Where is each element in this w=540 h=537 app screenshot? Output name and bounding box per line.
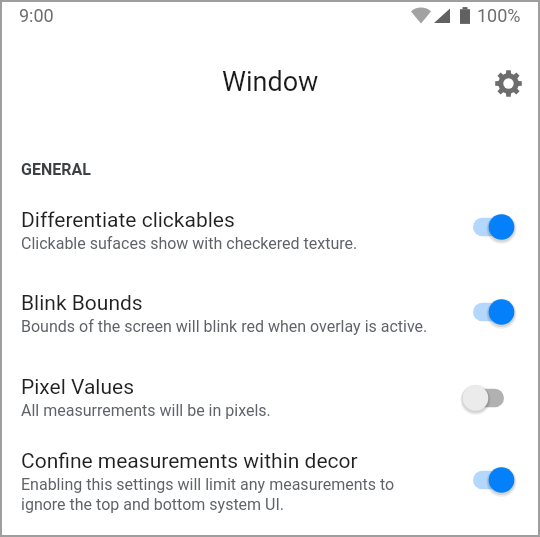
staticText: Pixel Values — [21, 375, 134, 400]
staticText: GENERAL — [21, 160, 91, 179]
button[interactable]: Confine measurements within decor — [2, 435, 538, 521]
staticText: Blink Bounds — [21, 291, 143, 316]
staticText: 100% — [477, 5, 521, 26]
staticText: Differentiate clickables — [21, 208, 235, 233]
button[interactable]: Pixel Values, off, toggle — [455, 380, 521, 416]
staticText: Confine measurements within decor — [21, 449, 358, 474]
button[interactable]: Confine measurements within decor, on, t… — [455, 462, 521, 498]
button[interactable]: Differentiate clickables — [2, 194, 538, 270]
button[interactable]: Settings — [488, 63, 528, 103]
staticText: Window — [222, 66, 319, 98]
staticText: 9:00 — [19, 5, 54, 26]
button[interactable]: Differentiate clickables, on, toggle — [455, 209, 521, 245]
button[interactable]: Blink Bounds — [2, 277, 538, 355]
button[interactable]: Blink Bounds, on, toggle — [455, 294, 521, 330]
staticText: Bounds of the screen will blink red when… — [21, 317, 428, 336]
button[interactable]: Pixel Values — [2, 361, 538, 429]
staticText: Enabling this settings will limit any me… — [21, 475, 438, 514]
staticText: All measurrements will be in pixels. — [21, 401, 271, 420]
staticText: Clickable sufaces show with checkered te… — [21, 234, 358, 253]
